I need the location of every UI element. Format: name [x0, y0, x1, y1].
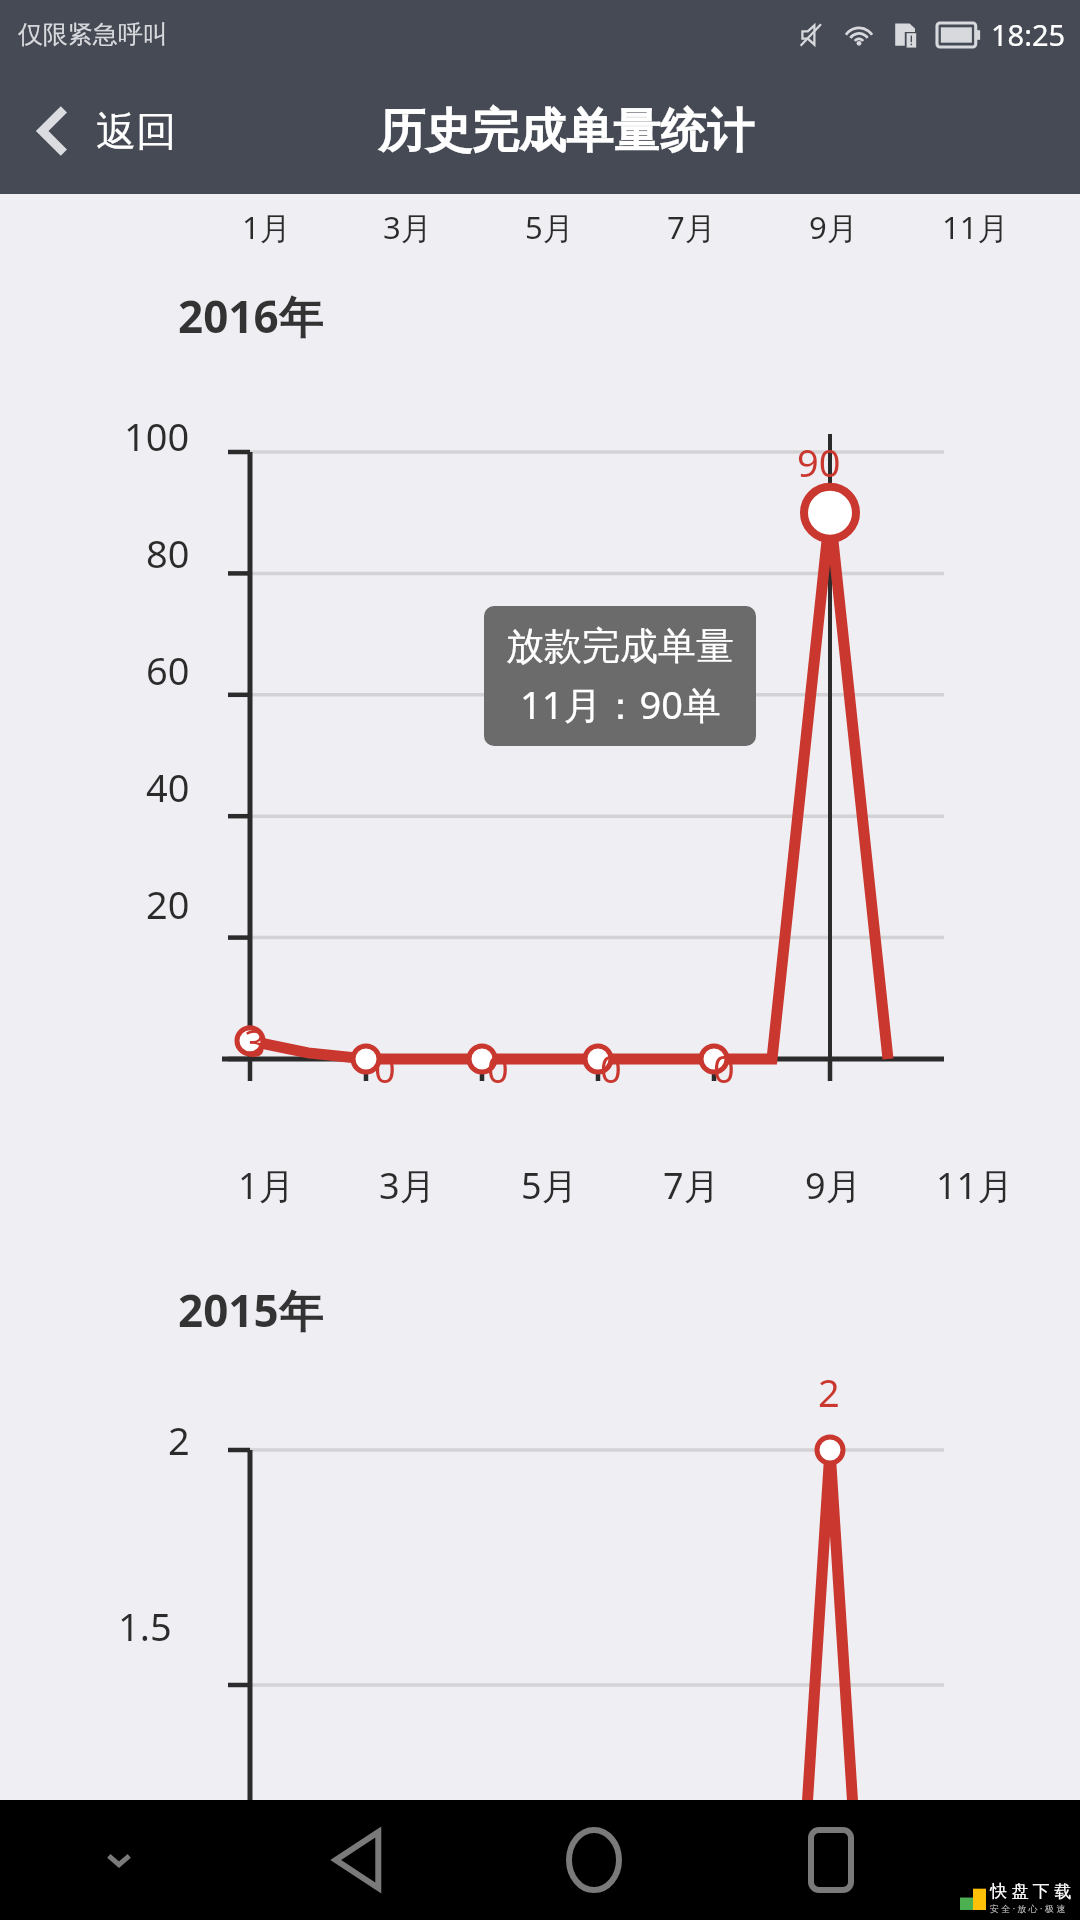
staticText: 100 [124, 410, 190, 462]
staticText: 0 [374, 1042, 396, 1094]
staticText: 仅限紧急呼叫 [18, 19, 168, 50]
staticText: 放款完成单量 [506, 622, 734, 670]
staticText: 1.5 [118, 1600, 172, 1652]
staticText: 11月 [936, 1161, 1014, 1210]
button[interactable]: 返回 [0, 90, 196, 172]
staticText: 1月 [238, 1161, 295, 1210]
staticText: 2015年 [178, 1280, 323, 1340]
button[interactable]: Recent apps [712, 1800, 949, 1920]
staticText: 3 [244, 1016, 266, 1068]
staticText: 7月 [663, 1161, 720, 1210]
staticText: 安 全 · 放 心 · 极 速 [990, 1902, 1066, 1914]
staticText: 0 [713, 1042, 735, 1094]
staticText: 1月 [242, 206, 291, 248]
staticText: 11月 [942, 206, 1009, 248]
staticText: 0 [600, 1042, 622, 1094]
button[interactable]: Home [475, 1800, 712, 1920]
staticText: 60 [146, 644, 190, 696]
staticText: 9月 [805, 1161, 862, 1210]
staticText: 3月 [379, 1161, 436, 1210]
staticText: 3月 [383, 206, 432, 248]
staticText: 0 [487, 1042, 509, 1094]
staticText: 11月：90单 [520, 678, 721, 730]
staticText: 历史完成单量统计 [378, 102, 754, 161]
staticText: 5月 [521, 1161, 578, 1210]
staticText: 2 [818, 1366, 840, 1418]
staticText: 返回 [96, 106, 176, 156]
button[interactable]: Hide navigation bar [0, 1800, 238, 1920]
staticText: 快 盘 下 载 [990, 1879, 1072, 1902]
staticText: 20 [146, 878, 190, 930]
staticText: 5月 [525, 206, 574, 248]
staticText: 2 [168, 1414, 190, 1466]
staticText: 18:25 [991, 15, 1066, 54]
staticText: 7月 [667, 206, 716, 248]
staticText: 90 [797, 436, 841, 488]
staticText: 80 [146, 527, 190, 579]
staticText: 9月 [809, 206, 858, 248]
button[interactable]: 放款完成单量 [484, 606, 756, 746]
staticText: 2016年 [178, 286, 323, 346]
button[interactable]: Back [238, 1800, 475, 1920]
staticText: 40 [146, 761, 190, 813]
